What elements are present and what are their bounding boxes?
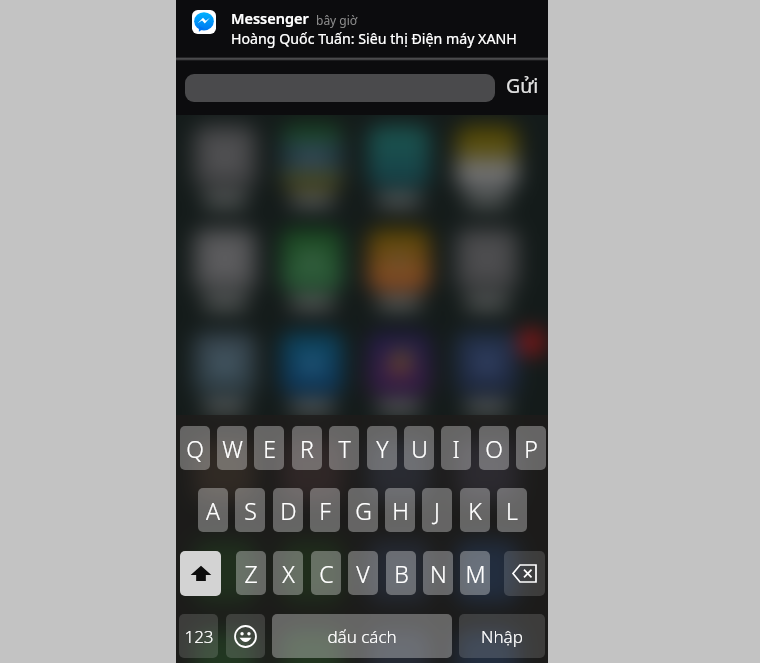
button[interactable]: V <box>348 551 378 595</box>
button[interactable]: Q <box>180 426 210 470</box>
staticText: A <box>206 495 220 526</box>
staticText: S <box>244 495 257 526</box>
button[interactable]: A <box>198 488 228 532</box>
staticText: bây giờ <box>316 12 358 28</box>
button[interactable]: Y <box>367 426 397 470</box>
button[interactable]: S <box>235 488 265 532</box>
button[interactable]: Gửi <box>506 72 539 99</box>
button[interactable]: J <box>422 488 452 532</box>
button[interactable]: P <box>516 426 546 470</box>
button[interactable]: F <box>310 488 340 532</box>
button[interactable]: T <box>329 426 359 470</box>
staticText: C <box>319 558 334 589</box>
staticText: P <box>524 433 538 464</box>
staticText: X <box>282 558 295 589</box>
button[interactable]: O <box>479 426 509 470</box>
staticText: K <box>468 495 482 526</box>
button[interactable]: D <box>273 488 303 532</box>
staticText: 123 <box>184 625 214 648</box>
button[interactable]: N <box>423 551 453 595</box>
staticText: Messenger <box>231 8 309 28</box>
button[interactable]: X <box>273 551 303 595</box>
staticText: M <box>465 558 486 589</box>
button[interactable]: Nhập <box>459 614 545 658</box>
staticText: E <box>263 433 276 464</box>
button[interactable]: Shift <box>180 551 221 596</box>
button[interactable]: 123 <box>179 614 218 658</box>
button[interactable]: Z <box>236 551 266 595</box>
staticText: G <box>355 495 372 526</box>
button[interactable]: G <box>348 488 378 532</box>
button[interactable]: I <box>441 426 471 470</box>
staticText: Q <box>186 433 204 464</box>
button[interactable]: M <box>460 551 490 595</box>
button[interactable]: Backspace <box>504 551 545 596</box>
button[interactable]: U <box>404 426 434 470</box>
staticText: B <box>394 558 409 589</box>
button[interactable]: W <box>217 426 247 470</box>
button[interactable]: K <box>460 488 490 532</box>
button[interactable]: Messenger <box>176 0 548 57</box>
staticText: J <box>434 495 440 526</box>
staticText: dấu cách <box>327 625 397 648</box>
staticText: Hoàng Quốc Tuấn: Siêu thị Điện máy XANH <box>231 29 517 48</box>
staticText: R <box>300 433 314 464</box>
staticText: N <box>430 558 447 589</box>
button[interactable]: L <box>497 488 527 532</box>
staticText: D <box>280 495 297 526</box>
staticText: V <box>356 558 370 589</box>
staticText: U <box>411 433 428 464</box>
staticText: I <box>452 433 460 464</box>
staticText: Nhập <box>481 625 523 648</box>
staticText: H <box>392 495 409 526</box>
staticText: Gửi <box>506 72 539 99</box>
staticText: W <box>222 433 243 464</box>
staticText: Z <box>244 558 258 589</box>
button[interactable]: H <box>385 488 415 532</box>
button[interactable] <box>185 74 495 102</box>
button[interactable]: E <box>254 426 284 470</box>
button[interactable]: B <box>386 551 416 595</box>
staticText: L <box>506 495 518 526</box>
button[interactable]: C <box>311 551 341 595</box>
staticText: Y <box>376 433 389 464</box>
staticText: O <box>485 433 503 464</box>
button[interactable]: dấu cách <box>272 614 452 658</box>
staticText: F <box>319 495 331 526</box>
staticText: T <box>338 433 351 464</box>
button[interactable]: Emoji <box>226 614 265 658</box>
button[interactable]: R <box>292 426 322 470</box>
